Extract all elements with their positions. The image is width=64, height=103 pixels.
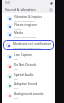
button[interactable]: Live Caption	[2, 52, 55, 61]
staticText: Off	[14, 57, 18, 60]
staticText: Off	[14, 67, 18, 70]
button[interactable]: Do Not Disturb	[2, 61, 55, 71]
staticText: Do Not Disturb	[14, 63, 37, 67]
staticText: Ring, notifications	[14, 19, 36, 22]
button[interactable]: Vibration & haptics	[2, 14, 55, 22]
staticText: Flutter	[14, 27, 22, 30]
staticText: Live Caption	[14, 53, 33, 57]
button[interactable]: Background sounds	[2, 90, 55, 100]
staticText: Off	[14, 96, 18, 99]
staticText: Phone ringtone	[14, 23, 38, 27]
staticText: On	[14, 77, 18, 80]
button[interactable]: Spatial Audio	[2, 71, 55, 81]
staticText: Vibration & haptics	[14, 15, 43, 19]
staticText: On	[14, 86, 18, 89]
staticText: Show media player	[14, 35, 37, 38]
staticText: Spatial Audio	[14, 73, 34, 77]
staticText: Media	[14, 31, 24, 35]
staticText: Moderate vol. notification	[13, 42, 52, 46]
staticText: Sound & vibration	[5, 7, 36, 12]
staticText: Adaptive Sound	[14, 82, 38, 86]
button[interactable]: Phone ringtone	[2, 22, 55, 30]
staticText: Headphone safety is on	[13, 46, 41, 49]
staticText: Background sounds	[14, 92, 44, 96]
button[interactable]: Media	[2, 30, 55, 38]
button[interactable]: Search	[48, 7, 53, 12]
button[interactable]: Adaptive Sound	[2, 81, 55, 90]
button[interactable]: Moderate vol. notification	[3, 40, 54, 50]
staticText: 9:41	[5, 1, 11, 5]
